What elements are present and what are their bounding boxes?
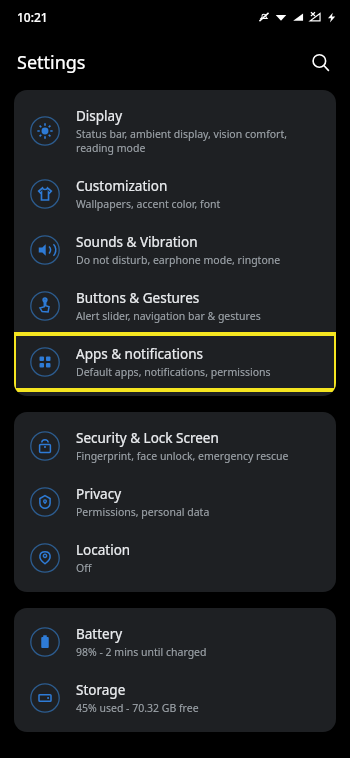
staticText: Sounds & Vibration xyxy=(76,233,198,251)
button[interactable]: Location xyxy=(14,530,336,586)
staticText: Wallpapers, accent color, font xyxy=(76,197,221,211)
staticText: Buttons & Gestures xyxy=(76,289,200,307)
staticText: Default apps, notifications, permissions xyxy=(76,365,271,379)
staticText: Permissions, personal data xyxy=(76,505,210,519)
button[interactable]: Sounds & Vibration xyxy=(14,222,336,278)
button[interactable]: Battery xyxy=(14,614,336,670)
staticText: Location xyxy=(76,541,131,559)
button[interactable]: Display xyxy=(14,96,336,166)
staticText: Fingerprint, face unlock, emergency resc… xyxy=(76,449,289,463)
staticText: Customization xyxy=(76,177,168,195)
staticText: Privacy xyxy=(76,485,122,503)
staticText: 98% - 2 mins until charged xyxy=(76,645,207,659)
staticText: Do not disturb, earphone mode, ringtone xyxy=(76,253,281,267)
button[interactable]: Privacy xyxy=(14,474,336,530)
staticText: Security & Lock Screen xyxy=(76,429,219,447)
button[interactable]: Search xyxy=(302,44,338,80)
button[interactable]: Security & Lock Screen xyxy=(14,418,336,474)
staticText: Storage xyxy=(76,681,126,699)
button[interactable]: Apps & notifications xyxy=(14,334,336,390)
button[interactable]: Buttons & Gestures xyxy=(14,278,336,334)
staticText: Settings xyxy=(17,50,86,75)
button[interactable]: Customization xyxy=(14,166,336,222)
staticText: Battery xyxy=(76,625,123,643)
staticText: Apps & notifications xyxy=(76,345,203,363)
button[interactable]: Storage xyxy=(14,670,336,726)
staticText: Alert slider, navigation bar & gestures xyxy=(76,309,261,323)
staticText: 45% used - 70.32 GB free xyxy=(76,701,199,715)
staticText: Off xyxy=(76,561,92,575)
staticText: Status bar, ambient display, vision comf… xyxy=(76,127,288,155)
staticText: 10:21 xyxy=(17,9,48,25)
staticText: Display xyxy=(76,107,123,125)
